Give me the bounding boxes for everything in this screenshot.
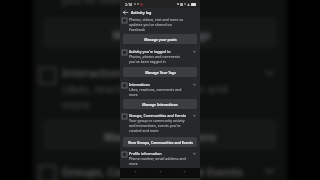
- staticText: Likes, reactions, comments and more: [129, 87, 186, 97]
- staticText: Interactions: [62, 65, 128, 80]
- staticText: Photos, videos, text and more as updates…: [129, 17, 186, 32]
- button[interactable]: Home: [159, 170, 162, 173]
- button[interactable]: Manage Interactions: [123, 99, 197, 109]
- button[interactable]: Expand: [192, 151, 197, 156]
- staticText: Likes, reactions, comments and more: [62, 80, 242, 112]
- button[interactable]: Expand: [192, 113, 197, 118]
- staticText: Groups, Communities and Events: [62, 163, 246, 179]
- staticText: 2:18: [125, 2, 133, 7]
- button[interactable]: Back: [122, 9, 129, 16]
- button[interactable]: Expand: [192, 82, 197, 87]
- button[interactable]: Recents: [183, 170, 186, 173]
- staticText: Manage Interactions: [142, 102, 178, 107]
- button[interactable]: Manage Your Tags: [43, 17, 277, 49]
- staticText: Manage Your Tags: [145, 70, 176, 75]
- staticText: Manage your posts: [144, 37, 177, 42]
- staticText: Profile information: [129, 151, 162, 156]
- staticText: Phone number, email address and more: [129, 156, 186, 166]
- button[interactable]: Expand: [261, 65, 277, 80]
- staticText: View Groups, Communities and Events: [128, 140, 193, 145]
- staticText: Manage Interactions: [103, 128, 217, 144]
- staticText: Photos, photos and comments you've been …: [129, 54, 186, 64]
- staticText: Interactions: [129, 82, 150, 87]
- staticText: Your group or community activity and int…: [129, 118, 186, 133]
- staticText: Activity you're tagged in: [129, 49, 171, 54]
- staticText: Your group or community activity and int…: [62, 179, 242, 180]
- button[interactable]: Expand: [261, 163, 277, 179]
- button[interactable]: Manage your posts: [123, 34, 197, 44]
- button[interactable]: Back: [134, 170, 137, 173]
- button[interactable]: Manage Interactions: [43, 118, 277, 150]
- button[interactable]: Expand: [192, 49, 197, 54]
- staticText: Activity log: [131, 10, 152, 15]
- button[interactable]: View Groups, Communities and Events: [123, 137, 197, 147]
- staticText: Manage Your Tags: [112, 27, 211, 42]
- staticText: Photos, photos and comments you've been …: [62, 0, 242, 8]
- staticText: Groups, Communities and Events: [129, 113, 187, 118]
- button[interactable]: Manage Your Tags: [123, 67, 197, 77]
